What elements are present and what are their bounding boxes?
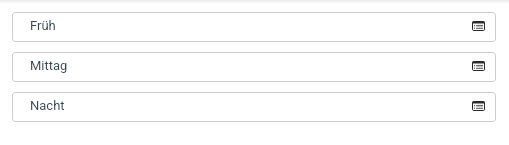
button[interactable]: Früh xyxy=(12,12,496,42)
staticText: Mittag xyxy=(30,58,68,73)
button[interactable]: Mittag xyxy=(12,52,496,82)
staticText: Nacht xyxy=(30,98,65,113)
staticText: Früh xyxy=(30,18,56,33)
button[interactable]: Auswahlliste öffnen xyxy=(466,14,490,40)
button[interactable]: Auswahlliste öffnen xyxy=(466,94,490,120)
button[interactable]: Nacht xyxy=(12,92,496,122)
button[interactable]: Auswahlliste öffnen xyxy=(466,54,490,80)
